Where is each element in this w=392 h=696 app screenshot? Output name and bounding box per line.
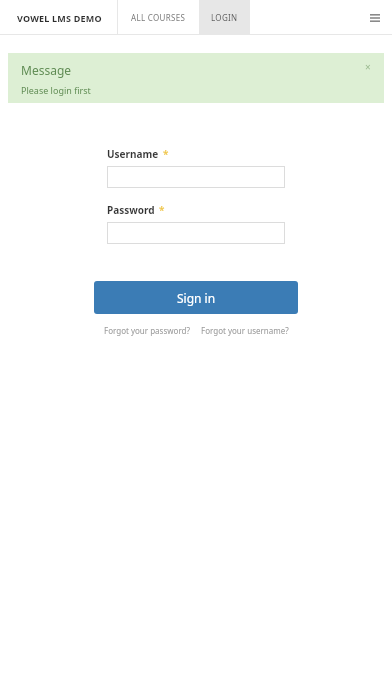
button[interactable] <box>107 222 285 244</box>
staticText: Forgot your password? <box>104 325 190 336</box>
staticText: Forgot your username? <box>201 325 289 336</box>
button[interactable]: Forgot your password? <box>101 322 193 339</box>
button[interactable]: Close message <box>360 59 376 75</box>
staticText: VOWEL LMS DEMO <box>17 12 102 24</box>
staticText: Message <box>21 62 72 78</box>
staticText: * <box>163 147 169 161</box>
staticText: Sign in <box>177 290 216 306</box>
staticText: Password <box>107 203 155 217</box>
button[interactable]: Menu <box>358 1 392 35</box>
button[interactable]: Sign in <box>94 281 298 314</box>
staticText: ALL COURSES <box>131 12 186 23</box>
button[interactable]: LOGIN <box>199 0 250 35</box>
staticText: LOGIN <box>211 12 238 23</box>
staticText: * <box>159 203 165 217</box>
staticText: × <box>365 60 371 74</box>
button[interactable] <box>107 166 285 188</box>
staticText: Username <box>107 147 159 161</box>
button[interactable]: ALL COURSES <box>118 0 199 35</box>
button[interactable]: Forgot your username? <box>198 322 292 339</box>
staticText: Please login first <box>21 84 91 96</box>
button[interactable]: VOWEL LMS DEMO <box>0 0 117 35</box>
